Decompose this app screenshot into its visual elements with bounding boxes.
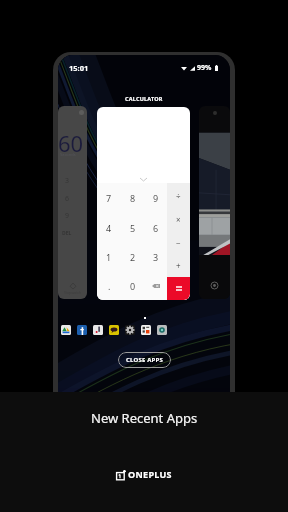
button[interactable]: ÷ [167,183,190,207]
staticText: 5 [130,222,136,234]
staticText: CLOSE APPS [126,356,163,364]
button[interactable]: 9 [144,183,167,213]
button[interactable]: App 2 [93,325,103,335]
button[interactable]: 5 [121,213,144,242]
staticText: 8 [130,192,136,204]
button[interactable]: App 3 [109,325,119,335]
staticText: 60 [58,128,84,158]
staticText: 3 [153,251,159,263]
staticText: 4 [106,222,112,234]
staticText: 99% [197,63,212,73]
staticText: CALCULATOR [125,95,163,102]
staticText: 0 [130,280,136,292]
button[interactable]: 60 [58,106,87,299]
staticText: Seconds [60,152,76,157]
button[interactable]: Equals [167,277,190,300]
other: Delete [152,284,160,288]
button[interactable]: App 4 [125,325,135,335]
staticText: 1 [106,251,112,263]
button[interactable]: App 1 [77,325,87,335]
staticText: New Recent Apps [91,409,198,427]
button[interactable]: . [97,271,121,300]
staticText: × [176,214,181,225]
button[interactable]: App 5 [141,325,151,335]
staticText: + [176,260,181,271]
button[interactable]: 0 [121,271,144,300]
button[interactable]: 7 [97,107,190,300]
button[interactable]: × [167,207,190,231]
button[interactable]: 8 [121,183,144,213]
button[interactable]: App 6 [157,325,167,335]
staticText: 7 [106,192,112,204]
staticText: DEL [62,230,72,237]
staticText: . [108,280,111,292]
staticText: 6 [153,222,159,234]
button[interactable]: 1 [97,242,121,271]
button[interactable]: 3 [144,242,167,271]
staticText: 6 [65,194,70,204]
button[interactable]: Delete [144,271,167,300]
staticText: 2 [130,251,136,263]
button[interactable]: − [167,231,190,254]
staticText: 9 [153,192,159,204]
staticText: 15:01 [69,63,89,73]
staticText: ONEPLUS [128,468,172,480]
staticText: ÷ [176,190,181,201]
button[interactable]: + [167,254,190,277]
staticText: 9 [65,211,70,221]
button[interactable] [199,106,230,299]
button[interactable]: 2 [121,242,144,271]
button[interactable]: 7 [97,183,121,213]
staticText: − [176,237,181,248]
button[interactable]: CLOSE APPS [118,352,171,368]
button[interactable]: 6 [144,213,167,242]
button[interactable]: 4 [97,213,121,242]
staticText: 3 [65,176,70,186]
button[interactable]: App 0 [61,325,71,335]
